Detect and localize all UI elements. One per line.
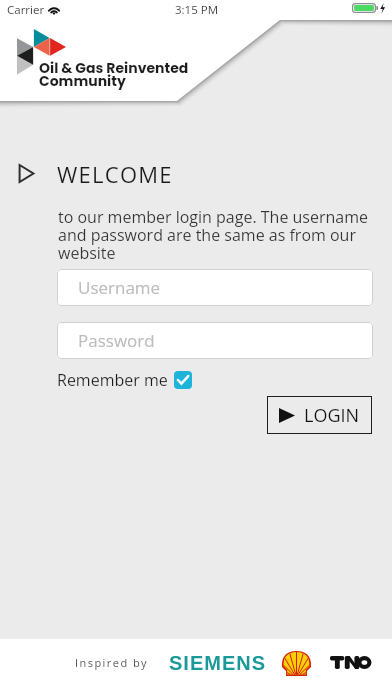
staticText: SIEMENS bbox=[169, 652, 267, 674]
staticText: LOGIN bbox=[304, 403, 360, 428]
button[interactable]: Remember me checkbox bbox=[174, 371, 192, 389]
staticText: Carrier bbox=[7, 2, 45, 18]
staticText: WELCOME bbox=[57, 159, 173, 189]
staticText: Password bbox=[78, 329, 155, 352]
button[interactable]: Password bbox=[57, 322, 373, 359]
staticText: to our member login page. The username a… bbox=[58, 206, 374, 264]
button[interactable]: Username bbox=[57, 269, 373, 306]
staticText: Remember me bbox=[57, 369, 168, 391]
other: Play bbox=[18, 163, 35, 184]
staticText: Username bbox=[78, 276, 161, 299]
staticText: 3:15 PM bbox=[175, 2, 218, 18]
staticText: Oil & Gas Reinvented Community bbox=[39, 58, 189, 91]
staticText: Inspired by bbox=[75, 655, 149, 670]
button[interactable]: LOGIN bbox=[267, 396, 372, 434]
